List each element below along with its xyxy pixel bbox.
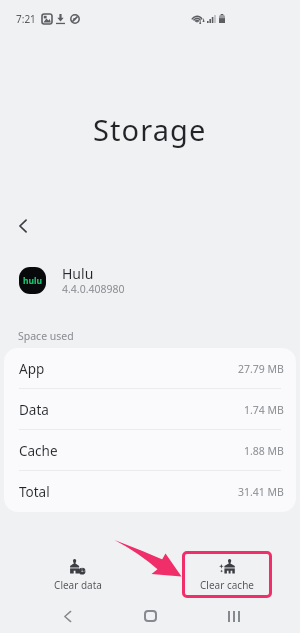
staticText: 27.79 MB [238,362,284,376]
staticText: Clear data [54,578,102,592]
button[interactable]: Cache [4,430,296,471]
staticText: Data [19,401,49,419]
staticText: Storage [93,110,207,149]
staticText: 31.41 MB [238,485,284,499]
staticText: Cache [19,442,58,460]
button[interactable]: Data [4,389,296,430]
staticText: Total [19,483,50,501]
button[interactable]: Recent apps [220,602,248,630]
button[interactable]: Navigate up [9,212,37,240]
button[interactable]: Clear cache [182,551,272,598]
button[interactable]: App [4,348,296,389]
staticText: 7:21 [16,12,36,26]
button[interactable]: Clear data [33,551,123,598]
staticText: 1.88 MB [244,444,284,458]
button[interactable]: Total [4,471,296,512]
staticText: Clear cache [200,578,254,592]
staticText: hulu [23,275,43,287]
button[interactable]: Home [136,602,164,630]
staticText: Space used [18,329,74,343]
staticText: Hulu [62,264,94,283]
staticText: 4.4.0.408980 [62,282,125,296]
button[interactable]: Back [53,602,81,630]
staticText: App [19,360,45,378]
staticText: 1.74 MB [244,403,284,417]
